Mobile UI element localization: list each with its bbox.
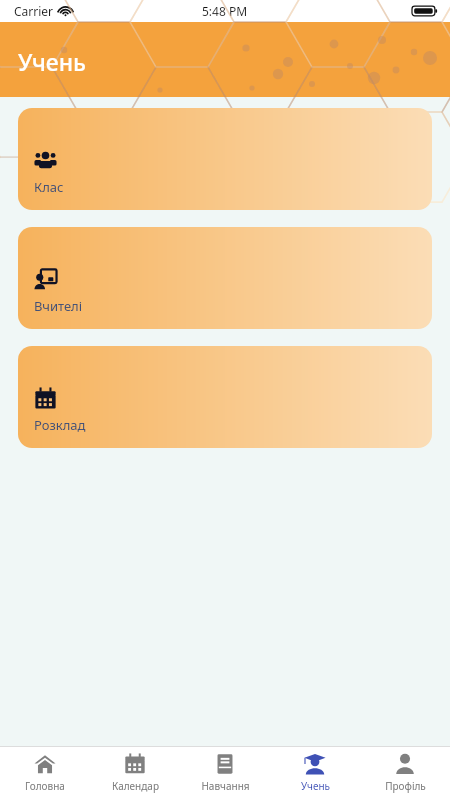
other: Вчителі bbox=[34, 268, 57, 291]
button[interactable]: Головна bbox=[0, 747, 90, 800]
staticText: Carrier bbox=[14, 3, 54, 19]
button[interactable]: Календар bbox=[90, 747, 180, 800]
staticText: Навчання bbox=[201, 779, 250, 793]
button[interactable]: Клас bbox=[18, 108, 432, 210]
button[interactable]: Навчання bbox=[180, 747, 270, 800]
staticText: Розклад bbox=[34, 416, 86, 434]
button[interactable]: Профіль bbox=[360, 747, 450, 800]
staticText: 5:48 PM bbox=[202, 3, 248, 19]
staticText: Клас bbox=[34, 178, 64, 196]
staticText: Учень bbox=[18, 46, 86, 77]
staticText: Календар bbox=[112, 779, 159, 793]
staticText: Головна bbox=[25, 779, 65, 793]
button[interactable]: Вчителі bbox=[18, 227, 432, 329]
button[interactable]: Розклад bbox=[18, 346, 432, 448]
staticText: Профіль bbox=[385, 779, 426, 793]
other: Клас bbox=[34, 149, 57, 172]
staticText: Учень bbox=[301, 779, 330, 793]
other: Розклад bbox=[34, 387, 57, 410]
staticText: Вчителі bbox=[34, 297, 83, 315]
button[interactable]: Учень bbox=[270, 747, 360, 800]
